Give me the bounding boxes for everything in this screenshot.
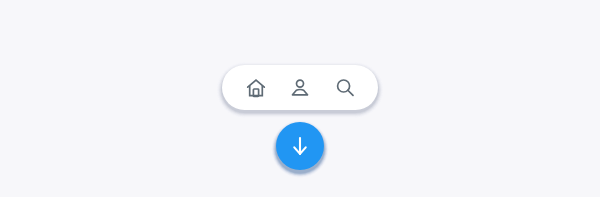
button[interactable]: Download [276, 122, 324, 170]
button[interactable]: Home [235, 67, 277, 109]
button[interactable]: Profile [279, 67, 321, 109]
button[interactable]: Search [324, 67, 366, 109]
